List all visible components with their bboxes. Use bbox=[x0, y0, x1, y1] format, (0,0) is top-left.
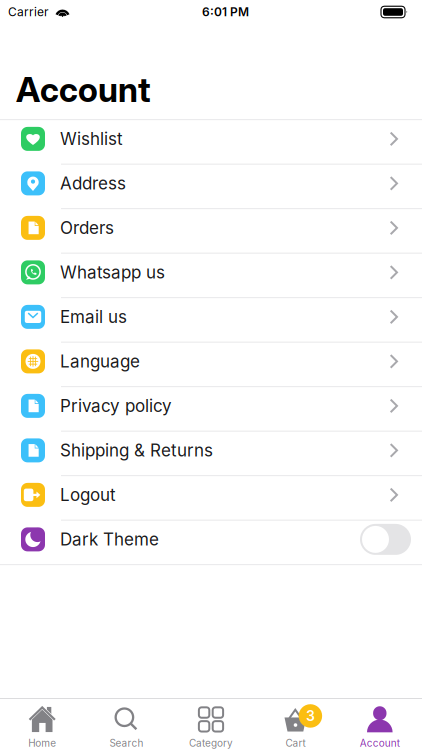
button[interactable]: Language bbox=[0, 343, 422, 387]
staticText: Logout bbox=[60, 485, 116, 505]
button[interactable]: Dark Theme bbox=[0, 521, 422, 565]
staticText: Carrier bbox=[8, 5, 49, 19]
button[interactable]: Email us bbox=[0, 298, 422, 343]
staticText: Privacy policy bbox=[60, 396, 172, 416]
button[interactable]: Account bbox=[338, 706, 422, 749]
staticText: Cart bbox=[285, 737, 305, 749]
button[interactable]: Whatsapp us bbox=[0, 254, 422, 298]
staticText: Shipping & Returns bbox=[60, 440, 213, 461]
staticText: Home bbox=[28, 737, 56, 749]
staticText: Wishlist bbox=[60, 129, 123, 149]
staticText: Address bbox=[60, 173, 126, 194]
button[interactable]: Orders bbox=[0, 209, 422, 254]
button[interactable]: 3 bbox=[253, 706, 338, 749]
staticText: 3 bbox=[306, 707, 315, 724]
button[interactable]: Logout bbox=[0, 476, 422, 521]
staticText: Account bbox=[360, 737, 400, 749]
staticText: Account bbox=[16, 69, 151, 110]
button[interactable]: Wishlist bbox=[0, 120, 422, 165]
staticText: Orders bbox=[60, 218, 114, 238]
button[interactable]: Shipping & Returns bbox=[0, 432, 422, 476]
button[interactable]: Address bbox=[0, 165, 422, 209]
staticText: Search bbox=[110, 737, 144, 749]
staticText: Language bbox=[60, 351, 140, 372]
staticText: Dark Theme bbox=[60, 529, 159, 550]
staticText: 6:01 PM bbox=[202, 5, 249, 19]
staticText: Category bbox=[189, 737, 233, 749]
staticText: Email us bbox=[60, 307, 127, 327]
button[interactable]: Search bbox=[84, 706, 169, 749]
button[interactable]: Privacy policy bbox=[0, 387, 422, 432]
button[interactable]: Home bbox=[0, 706, 84, 749]
staticText: Whatsapp us bbox=[60, 262, 165, 283]
button[interactable]: Category bbox=[169, 706, 253, 749]
